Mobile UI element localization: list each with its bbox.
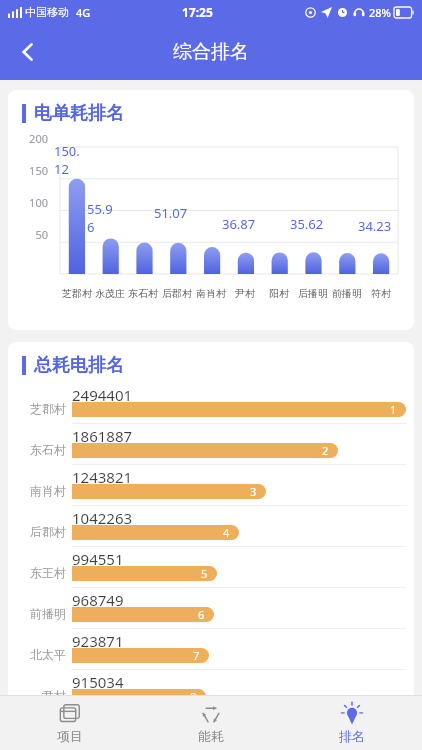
staticText: 南肖村 — [196, 287, 226, 300]
staticText: 综合排名 — [173, 40, 249, 64]
staticText: 51.07 — [154, 204, 188, 222]
staticText: 3 — [250, 484, 257, 499]
staticText: 阳村 — [269, 287, 289, 300]
staticText: 中国移动 — [25, 5, 69, 19]
staticText: 2 — [322, 443, 329, 458]
staticText: 东石村 — [128, 287, 158, 300]
staticText: 北太平 — [30, 647, 66, 662]
staticText: 994551 — [72, 549, 124, 569]
staticText: 150 — [29, 163, 48, 178]
button[interactable]: 南肖村 — [8, 465, 414, 506]
staticText: 东王村 — [30, 565, 66, 580]
staticText: 电单耗排名 — [34, 102, 124, 125]
staticText: 200 — [29, 131, 48, 146]
staticText: 项目 — [57, 728, 83, 744]
button[interactable]: 前播明 — [8, 588, 414, 629]
staticText: 芝郡村 — [30, 401, 66, 416]
staticText: 5 — [201, 566, 208, 581]
staticText: 永茂庄 — [95, 287, 125, 300]
staticText: 6 — [198, 607, 205, 622]
staticText: 34.23 — [358, 217, 392, 235]
staticText: 17:25 — [182, 4, 213, 20]
staticText: 符村 — [371, 287, 391, 300]
staticText: 排名 — [339, 728, 365, 744]
staticText: 前播明 — [30, 606, 66, 621]
staticText: 后播明 — [298, 287, 328, 300]
staticText: 7 — [193, 648, 200, 663]
button[interactable]: 项目 — [0, 696, 140, 750]
staticText: 100 — [29, 195, 48, 210]
button[interactable]: Back — [6, 30, 50, 74]
staticText: 4 — [223, 525, 230, 540]
button[interactable]: 东王村 — [8, 547, 414, 588]
staticText: 前播明 — [332, 287, 362, 300]
staticText: 后郡村 — [30, 524, 66, 539]
staticText: 芝郡村 — [62, 287, 92, 300]
button[interactable]: 后播明 — [8, 711, 414, 750]
button[interactable]: 排名 — [281, 696, 422, 750]
staticText: 尹村 — [235, 287, 255, 300]
staticText: 150.12 — [54, 142, 87, 178]
staticText: 4G — [76, 5, 91, 20]
button[interactable]: 北太平 — [8, 629, 414, 670]
staticText: 后播明 — [30, 727, 66, 742]
staticText: 1 — [390, 402, 397, 417]
button[interactable]: 能耗 — [140, 696, 281, 750]
button[interactable]: 东石村 — [8, 424, 414, 465]
staticText: 1243821 — [72, 467, 133, 487]
button[interactable]: 尹村 — [8, 670, 414, 711]
button[interactable]: 后郡村 — [8, 506, 414, 547]
staticText: 28% — [369, 5, 391, 20]
staticText: 1042263 — [72, 508, 133, 528]
staticText: 1861887 — [72, 426, 133, 446]
staticText: 东石村 — [30, 442, 66, 457]
staticText: 50 — [35, 227, 48, 242]
staticText: 8 — [190, 689, 197, 704]
staticText: 南肖村 — [30, 483, 66, 498]
staticText: 902218 — [72, 713, 124, 733]
staticText: 2494401 — [72, 385, 133, 405]
staticText: 36.87 — [222, 215, 256, 233]
staticText: 后郡村 — [162, 287, 192, 300]
staticText: 总耗电排名 — [34, 354, 124, 377]
staticText: 尹村 — [42, 688, 66, 703]
staticText: 923871 — [72, 631, 124, 651]
staticText: 55.96 — [87, 200, 120, 236]
button[interactable]: 芝郡村 — [8, 383, 414, 424]
staticText: 968749 — [72, 590, 124, 610]
staticText: 915034 — [72, 672, 124, 692]
staticText: 35.62 — [290, 215, 324, 233]
staticText: 能耗 — [198, 728, 224, 744]
